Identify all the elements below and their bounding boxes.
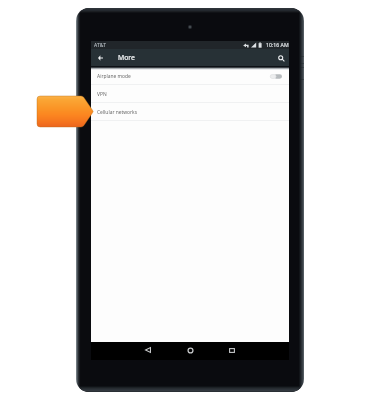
button[interactable]: Cellular networks	[91, 103, 289, 121]
staticText: VPN	[97, 91, 107, 98]
button[interactable]: Back	[141, 343, 155, 357]
staticText: Cellular networks	[97, 109, 138, 116]
button[interactable]: Home	[183, 343, 197, 357]
staticText: Airplane mode	[97, 73, 131, 80]
staticText: 10:16 AM	[266, 41, 289, 48]
staticText: More	[118, 53, 135, 62]
button[interactable]: Airplane mode	[91, 67, 289, 85]
button[interactable]: Recent apps	[225, 343, 239, 357]
staticText: AT&T	[94, 42, 107, 49]
button[interactable]: Navigate up	[94, 52, 107, 64]
button[interactable]: Search	[275, 52, 288, 64]
button[interactable]: VPN	[91, 85, 289, 103]
button[interactable]: Airplane mode switch	[270, 74, 282, 79]
button[interactable]: Callout pointer	[37, 96, 94, 127]
